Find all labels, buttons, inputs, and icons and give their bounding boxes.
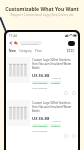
staticText: New xyxy=(9,49,16,53)
button[interactable]: Add to cart xyxy=(72,91,76,95)
button[interactable]: Category xyxy=(19,49,32,53)
button[interactable]: Price xyxy=(35,49,42,53)
button[interactable]: View options xyxy=(67,49,75,52)
staticText: Verified xyxy=(51,81,60,84)
staticText: Fast Delivery xyxy=(33,81,48,84)
staticText: Verified xyxy=(51,124,60,127)
staticText: Price xyxy=(35,49,42,53)
button[interactable]: New xyxy=(9,49,16,53)
staticText: 11:44 xyxy=(9,34,17,38)
button[interactable]: Add to cart xyxy=(72,134,76,138)
other: Logo xyxy=(14,41,18,45)
staticText: Category xyxy=(19,49,32,53)
staticText: 2 pieces xyxy=(52,119,62,122)
staticText: Custom Logo 500ml Stainless Steel Vacuum… xyxy=(32,58,76,70)
staticText: US $6.88 xyxy=(32,73,50,79)
button[interactable]: Custom Logo 500ml Stainless Steel Vacuum… xyxy=(6,99,78,142)
staticText: Fast Delivery xyxy=(33,124,48,127)
button[interactable]: Favorite xyxy=(64,134,68,138)
button[interactable]: Menu xyxy=(68,41,75,46)
staticText: Customizable What You Want xyxy=(5,6,79,13)
staticText: Custom Logo 500ml Stainless Steel Vacuum… xyxy=(32,101,76,113)
button[interactable]: Back xyxy=(9,41,13,45)
staticText: Support Customized Logo,Size,Colors,etc xyxy=(10,12,74,16)
button[interactable]: Favorite xyxy=(64,91,68,95)
staticText: 2 pieces xyxy=(52,76,62,79)
staticText: Free shipping xyxy=(32,86,48,89)
button[interactable]: stainless bottle xyxy=(20,41,42,45)
staticText: US $6.88 xyxy=(32,116,50,122)
staticText: stainless bottle xyxy=(20,42,39,45)
staticText: Free shipping xyxy=(32,129,48,132)
button[interactable]: Custom Logo 500ml Stainless Steel Vacuum… xyxy=(6,56,78,99)
